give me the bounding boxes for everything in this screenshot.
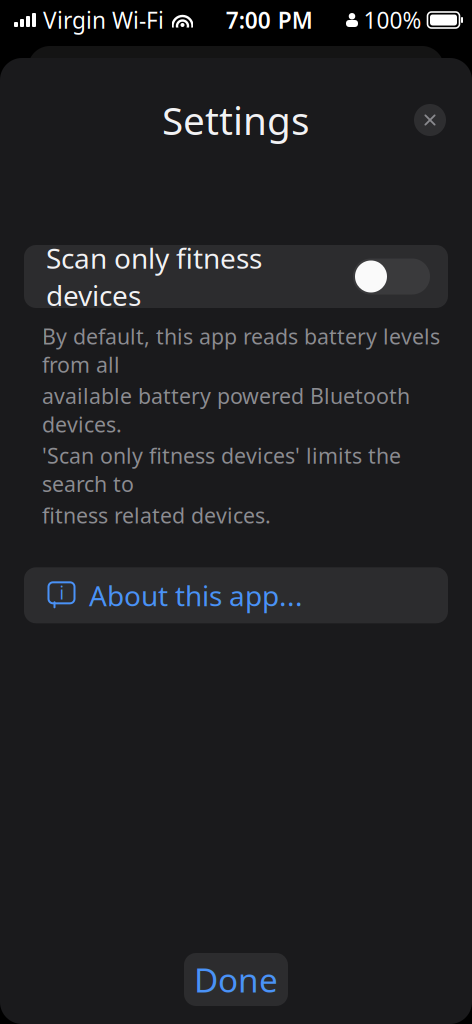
staticText: Virgin Wi-Fi [43,5,164,35]
staticText: By default, this app reads battery level… [42,322,440,379]
staticText: available battery powered Bluetooth devi… [42,382,410,438]
staticText: About this app... [89,577,303,614]
staticText: fitness related devices. [42,501,271,529]
staticText: 100% [363,5,421,35]
staticText: 7:00 [226,5,271,35]
staticText: Scan only fitness devices [46,239,262,314]
staticText: Settings [162,94,310,146]
staticText: Done [194,957,278,1002]
button[interactable]: Scan only fitness devices [24,245,448,308]
staticText: 'Scan only fitness devices' limits the s… [42,441,401,498]
button[interactable]: i [24,567,448,623]
staticText: i [59,581,63,604]
button[interactable]: Close [402,92,458,148]
button[interactable]: Done [184,953,288,1006]
staticText: PM [272,5,313,35]
